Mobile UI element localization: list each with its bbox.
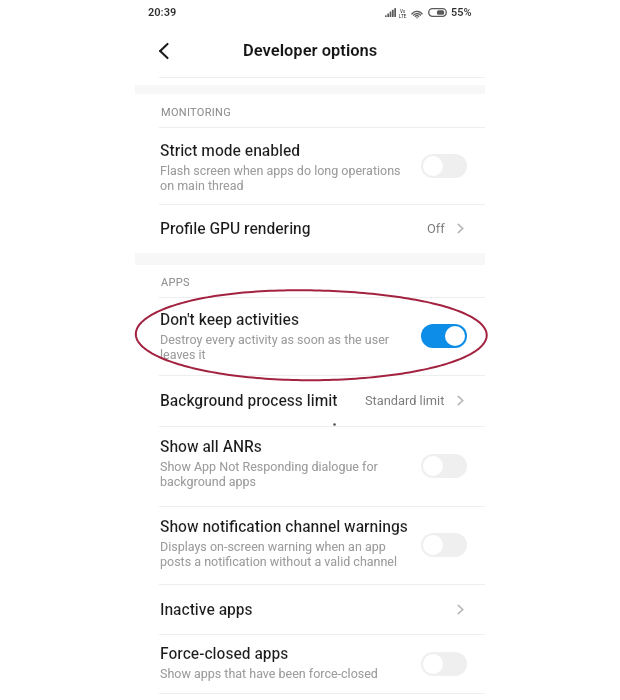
staticText: MONITORING xyxy=(161,106,231,119)
staticText: 55% xyxy=(451,6,472,19)
staticText: Show all ANRs xyxy=(160,438,262,456)
button[interactable]: Switch on xyxy=(421,324,467,348)
button[interactable]: Show notification channel warnings xyxy=(135,506,485,584)
staticText: Force-closed apps xyxy=(160,645,289,663)
staticText: Displays on-screen warning when an app p… xyxy=(160,539,398,569)
staticText: Strict mode enabled xyxy=(160,142,301,160)
staticText: Show App Not Responding dialogue for bac… xyxy=(160,459,378,489)
button[interactable]: Force-closed apps xyxy=(135,634,485,693)
staticText: Show notification channel warnings xyxy=(160,518,408,536)
staticText: Background process limit xyxy=(160,392,338,410)
button[interactable]: Switch off xyxy=(421,652,467,676)
button[interactable]: Show all ANRs xyxy=(135,426,485,506)
button[interactable]: Strict mode enabled xyxy=(135,127,485,205)
staticText: Profile GPU rendering xyxy=(160,220,311,238)
staticText: Vo xyxy=(400,9,406,14)
button[interactable]: Back xyxy=(144,31,184,71)
staticText: LTE xyxy=(399,14,407,18)
button[interactable]: Profile GPU rendering xyxy=(135,204,485,253)
button[interactable]: Switch off xyxy=(421,533,467,557)
staticText: Developer options xyxy=(243,41,378,60)
staticText: Destroy every activity as soon as the us… xyxy=(160,332,390,362)
staticText: Show apps that have been force-closed xyxy=(160,666,378,681)
staticText: Don't keep activities xyxy=(160,311,299,329)
button[interactable]: Don't keep activities xyxy=(135,297,485,375)
staticText: Inactive apps xyxy=(160,601,253,619)
button[interactable]: Switch off xyxy=(421,454,467,478)
button[interactable]: Switch off xyxy=(421,154,467,178)
staticText: Standard limit xyxy=(365,393,445,408)
staticText: APPS xyxy=(161,276,190,289)
staticText: Off xyxy=(427,221,445,236)
staticText: Flash screen when apps do long operation… xyxy=(160,163,401,193)
staticText: 20:39 xyxy=(148,6,177,19)
button[interactable]: Inactive apps xyxy=(135,584,485,635)
button[interactable]: Background process limit xyxy=(135,375,485,426)
